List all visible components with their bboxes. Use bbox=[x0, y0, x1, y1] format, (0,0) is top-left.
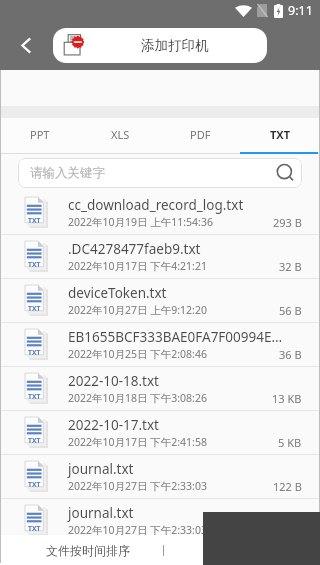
button[interactable]: PDF bbox=[160, 118, 240, 154]
button[interactable]: 文件按时间排序 bbox=[0, 535, 320, 565]
staticText: TXT bbox=[28, 392, 41, 401]
button[interactable]: TXT bbox=[0, 455, 320, 498]
button[interactable]: TXT bbox=[0, 323, 320, 366]
staticText: 32 B bbox=[279, 259, 302, 274]
button[interactable]: TXT bbox=[0, 367, 320, 410]
staticText: 2022年10月27日 下午2:33:03 bbox=[68, 523, 207, 537]
button[interactable]: TXT bbox=[0, 499, 320, 542]
staticText: 文件按时间排序 bbox=[46, 543, 130, 558]
button[interactable]: 添加打印机 bbox=[53, 28, 267, 63]
button[interactable]: TXT bbox=[0, 191, 320, 234]
button[interactable]: TXT bbox=[0, 235, 320, 278]
staticText: TXT bbox=[28, 436, 41, 445]
staticText: TXT bbox=[28, 348, 41, 357]
staticText: journal.txt bbox=[68, 460, 134, 478]
staticText: 122 B bbox=[273, 479, 302, 494]
staticText: 13 KB bbox=[272, 391, 302, 406]
staticText: 2022年10月17日 下午2:41:58 bbox=[68, 435, 207, 449]
button[interactable]: XLS bbox=[80, 118, 160, 154]
staticText: 2022年10月27日 下午2:33:03 bbox=[68, 479, 207, 493]
staticText: 5 KB bbox=[278, 435, 302, 450]
button[interactable]: TXT bbox=[240, 118, 320, 154]
staticText: TXT bbox=[28, 216, 41, 225]
staticText: .DC4278477faeb9.txt bbox=[68, 240, 201, 258]
staticText: 请输入关键字 bbox=[30, 165, 105, 181]
staticText: 293 B bbox=[273, 215, 302, 230]
staticText: 2022年10月27日 上午9:12:20 bbox=[68, 303, 207, 317]
staticText: PPT bbox=[30, 127, 50, 142]
staticText: TXT bbox=[28, 260, 41, 269]
staticText: deviceToken.txt bbox=[68, 284, 167, 302]
staticText: journal.txt bbox=[68, 504, 134, 522]
button[interactable]: TXT bbox=[0, 411, 320, 454]
staticText: 2022年10月18日 下午3:08:26 bbox=[68, 391, 207, 405]
staticText: TXT bbox=[28, 304, 41, 313]
staticText: EB1655BCF333BAE0FA7F00994E… bbox=[68, 328, 283, 346]
staticText: 2022年10月17日 下午4:21:21 bbox=[68, 259, 207, 273]
staticText: 2022年10月25日 下午2:08:46 bbox=[68, 347, 207, 361]
staticText: 2022年10月19日 上午11:54:36 bbox=[68, 215, 213, 229]
staticText: TXT bbox=[28, 480, 41, 489]
staticText: TXT bbox=[28, 524, 41, 533]
staticText: 添加打印机 bbox=[141, 37, 209, 54]
button[interactable]: PPT bbox=[0, 118, 80, 154]
staticText: XLS bbox=[111, 127, 130, 142]
button[interactable]: 请输入关键字 bbox=[18, 158, 302, 188]
staticText: 56 B bbox=[279, 303, 302, 318]
staticText: TXT bbox=[270, 127, 291, 142]
button[interactable]: Back bbox=[10, 29, 42, 61]
staticText: 2022-10-18.txt bbox=[68, 372, 159, 390]
staticText: PDF bbox=[190, 127, 211, 142]
staticText: 2022-10-17.txt bbox=[68, 416, 159, 434]
staticText: 9:11 bbox=[288, 2, 313, 19]
staticText: 36 B bbox=[279, 347, 302, 362]
staticText: cc_download_record_log.txt bbox=[68, 196, 244, 214]
button[interactable]: TXT bbox=[0, 279, 320, 322]
